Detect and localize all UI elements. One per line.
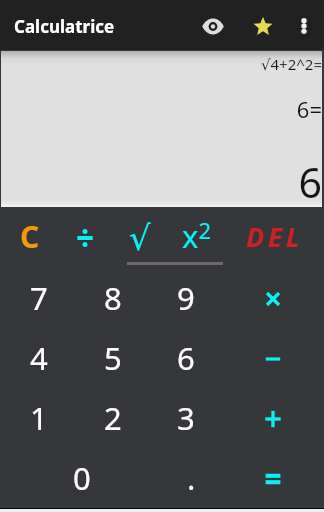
button[interactable]: 2 [76, 389, 149, 449]
button[interactable]: Preview [190, 0, 235, 50]
staticText: 4 [30, 337, 48, 379]
staticText: 6= [296, 94, 322, 124]
button[interactable]: Multiply [222, 268, 324, 329]
button[interactable]: 0 [2, 449, 161, 509]
button[interactable]: 4 [2, 329, 76, 389]
button[interactable]: 7 [2, 268, 76, 329]
button[interactable]: DEL [222, 207, 324, 268]
button[interactable]: 5 [76, 329, 149, 389]
button[interactable]: 3 [149, 389, 222, 449]
button[interactable]: x2 [167, 207, 222, 268]
staticText: 9 [177, 277, 195, 319]
staticText: 6 [298, 154, 322, 210]
button[interactable]: Divide [57, 207, 112, 268]
button[interactable]: Plus [222, 389, 324, 449]
button[interactable]: Equals [222, 449, 324, 509]
staticText: x2 [182, 215, 211, 257]
staticText: C [20, 216, 40, 257]
staticText: 3 [177, 397, 195, 439]
button[interactable]: C [2, 207, 57, 268]
staticText: . [187, 457, 196, 499]
staticText: √ [129, 218, 151, 258]
staticText: 6 [177, 337, 195, 379]
button[interactable]: 1 [2, 389, 76, 449]
button[interactable]: More options [288, 0, 320, 50]
staticText: 2 [104, 397, 122, 439]
staticText: DEL [246, 218, 304, 255]
button[interactable]: Minus [222, 329, 324, 389]
staticText: 1 [30, 397, 48, 439]
button[interactable]: 9 [149, 268, 222, 329]
staticText: √4+2^2= [260, 54, 322, 74]
button[interactable]: . [161, 449, 222, 509]
staticText: 5 [104, 337, 122, 379]
button[interactable]: 8 [76, 268, 149, 329]
staticText: 8 [104, 277, 122, 319]
button[interactable]: √ [112, 207, 167, 268]
button[interactable]: Favorite [240, 0, 285, 50]
staticText: 0 [73, 457, 91, 499]
staticText: 7 [30, 277, 48, 319]
staticText: Calculatrice [14, 15, 115, 38]
button[interactable]: 6 [149, 329, 222, 389]
